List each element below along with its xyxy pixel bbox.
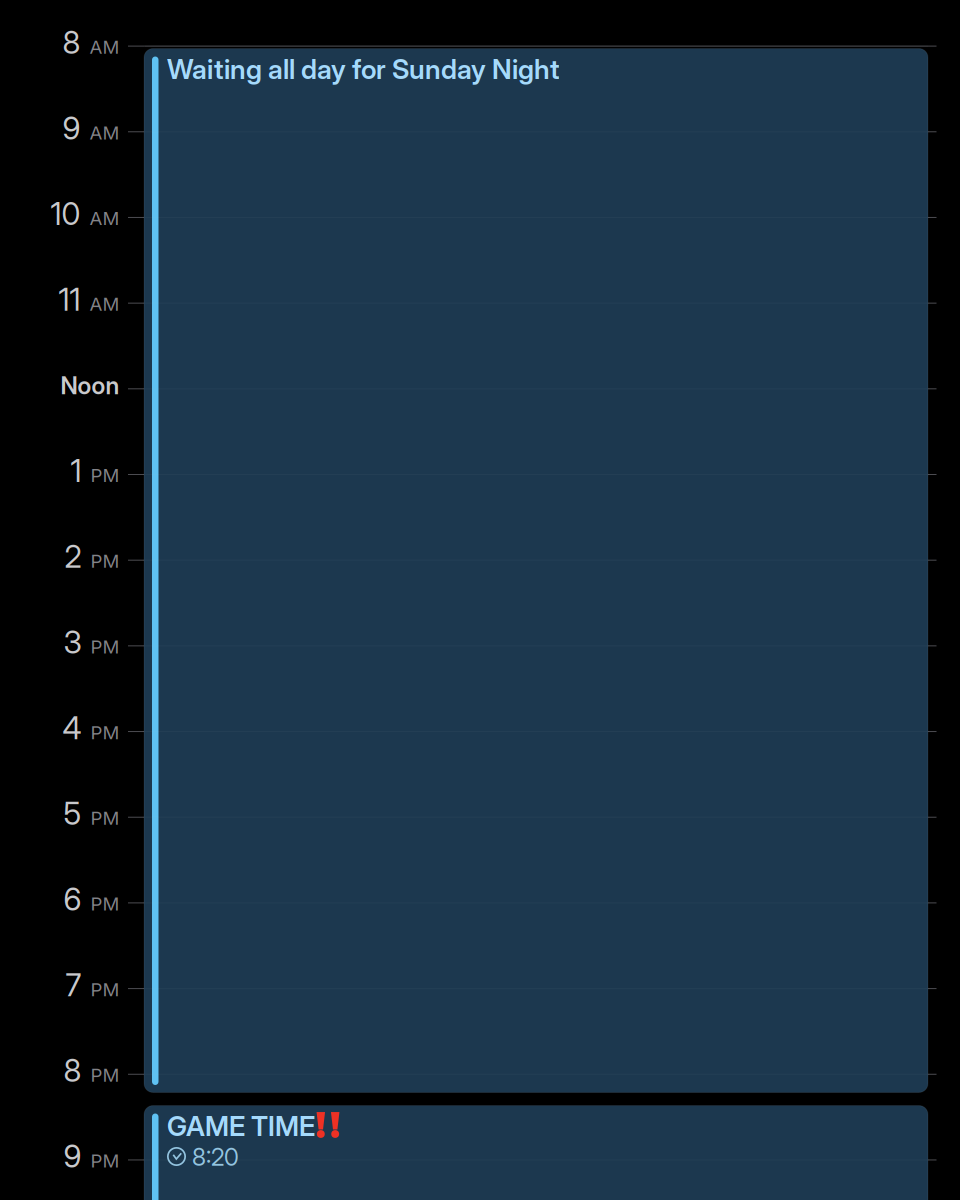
staticText: Noon	[60, 371, 119, 400]
staticText: 5	[63, 795, 81, 832]
staticText: PM	[90, 464, 119, 487]
button[interactable]: GAME TIME ‼, 8:20	[144, 1105, 928, 1200]
staticText: PM	[90, 550, 119, 572]
staticText: 10	[50, 195, 80, 232]
staticText: PM	[90, 978, 119, 1001]
staticText: 3	[63, 624, 81, 661]
staticText: PM	[90, 807, 119, 829]
staticText: AM	[89, 121, 119, 144]
staticText: PM	[90, 1064, 119, 1086]
staticText: Waiting all day for Sunday Night	[167, 52, 560, 85]
staticText: AM	[89, 36, 119, 58]
staticText: 9	[62, 110, 80, 147]
staticText: 9	[63, 1138, 81, 1175]
staticText: GAME TIME	[167, 1109, 315, 1142]
staticText: AM	[89, 207, 119, 230]
staticText: PM	[90, 1149, 119, 1172]
staticText: 7	[65, 966, 81, 1004]
staticText: 4	[62, 709, 81, 746]
staticText: 11	[58, 281, 80, 318]
staticText: 6	[63, 881, 81, 918]
staticText: PM	[90, 635, 119, 658]
staticText: 2	[64, 538, 81, 575]
button[interactable]: Waiting all day for Sunday Night	[144, 48, 928, 1092]
staticText: 8	[63, 1052, 81, 1089]
staticText: 1	[70, 452, 81, 489]
staticText: 8:20	[192, 1142, 239, 1171]
staticText: AM	[89, 293, 119, 315]
staticText: PM	[90, 892, 119, 915]
staticText: 8	[62, 24, 80, 61]
staticText: PM	[90, 721, 119, 744]
